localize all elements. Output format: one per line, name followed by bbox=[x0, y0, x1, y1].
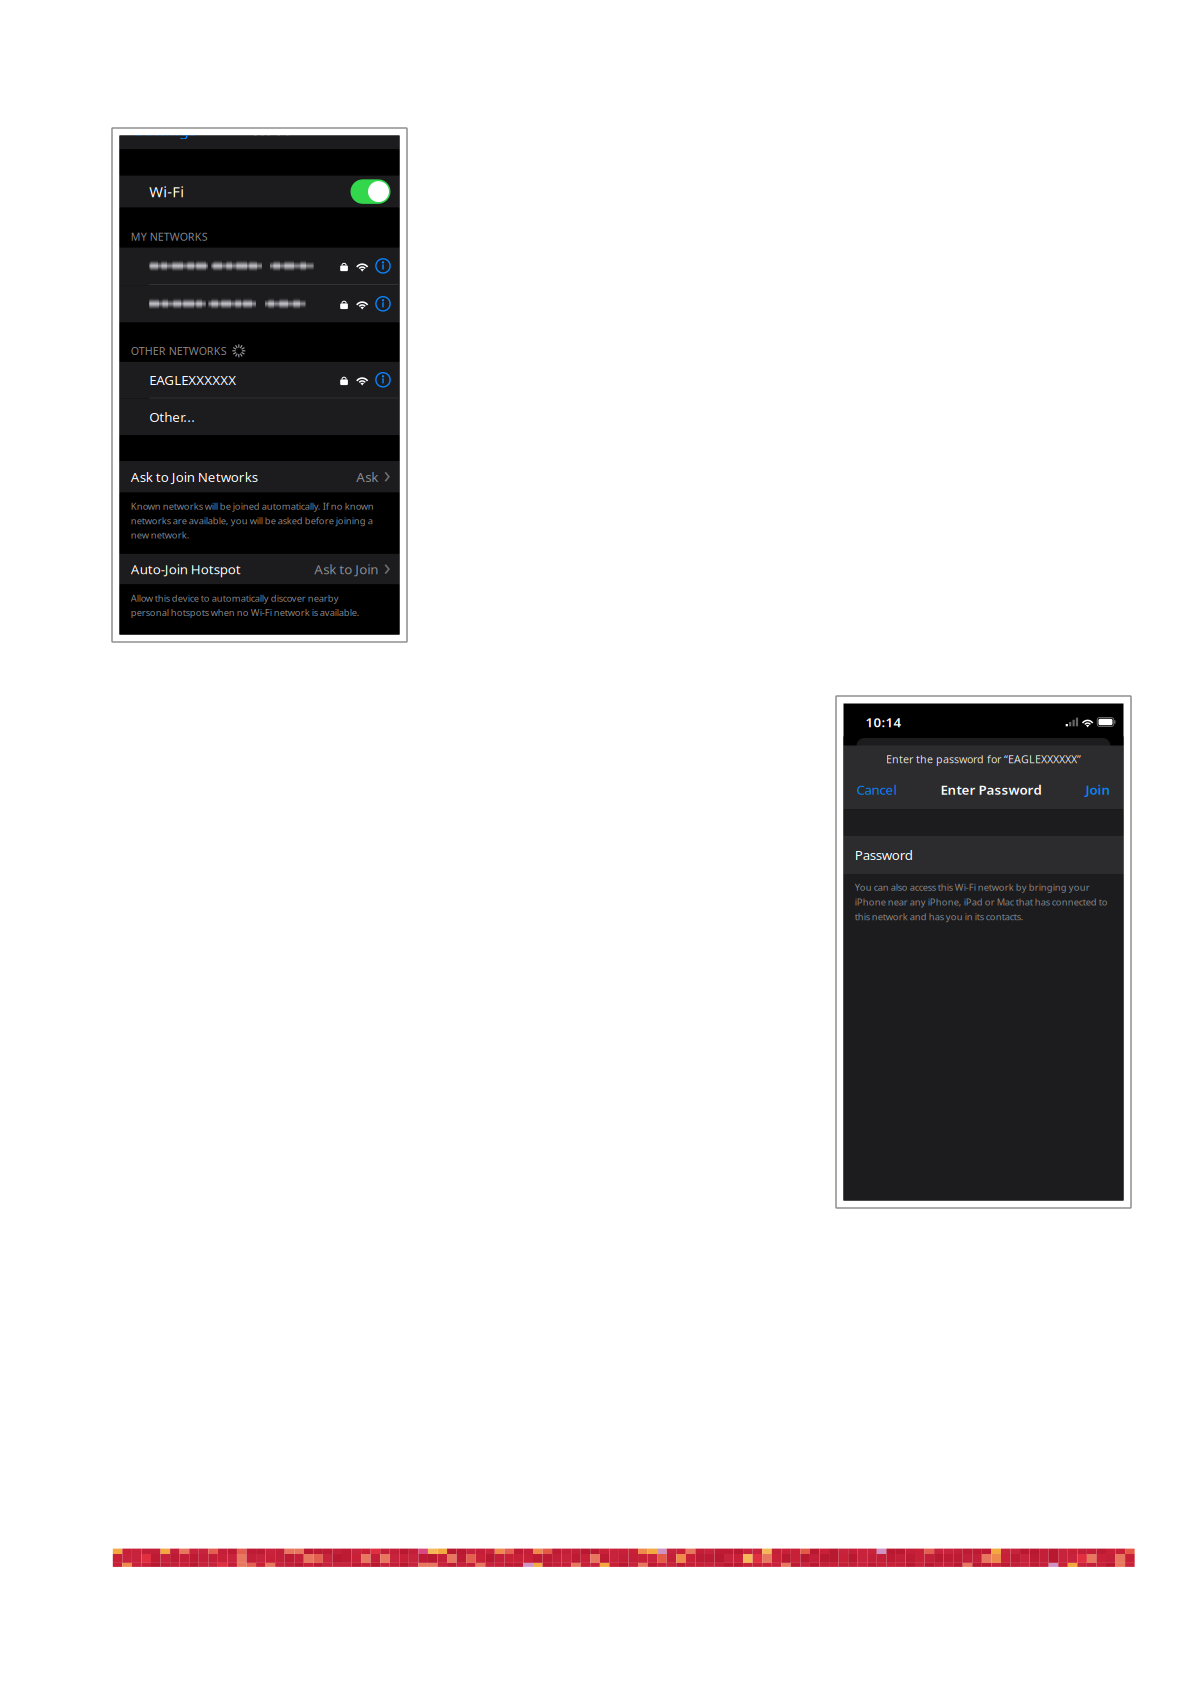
staticText: Ask to Join bbox=[314, 560, 378, 578]
button[interactable]: Password bbox=[843, 835, 1123, 874]
staticText: Wi-Fi bbox=[251, 120, 290, 141]
staticText: MY NETWORKS bbox=[131, 229, 208, 244]
staticText: Wi-Fi bbox=[149, 182, 184, 201]
button[interactable]: Auto-Join Hotspot bbox=[119, 554, 399, 584]
staticText: Known networks will be joined automatica… bbox=[131, 500, 374, 541]
staticText: EAGLEXXXXXX bbox=[149, 371, 236, 389]
button[interactable]: Cancel bbox=[854, 778, 898, 801]
staticText: Ask bbox=[356, 468, 378, 486]
button[interactable]: Wi-Fi bbox=[119, 176, 399, 208]
staticText: OTHER NETWORKS bbox=[131, 344, 227, 358]
staticText: You can also access this Wi-Fi network b… bbox=[855, 881, 1108, 923]
button[interactable]: Join bbox=[1083, 778, 1112, 801]
staticText: Allow this device to automatically disco… bbox=[131, 592, 360, 619]
staticText: Password bbox=[855, 846, 913, 864]
staticText: Auto-Join Hotspot bbox=[131, 560, 241, 578]
button[interactable] bbox=[119, 285, 399, 322]
staticText: Ask to Join Networks bbox=[131, 468, 258, 486]
button[interactable]: EAGLEXXXXXX bbox=[119, 362, 399, 399]
button[interactable]: Ask to Join Networks bbox=[119, 461, 399, 492]
staticText: Settings bbox=[135, 119, 197, 140]
staticText: Enter Password bbox=[940, 781, 1041, 798]
staticText: Enter the password for “EAGLEXXXXXX” bbox=[886, 752, 1081, 766]
staticText: 10:14 bbox=[865, 713, 901, 731]
button[interactable]: Other... bbox=[119, 399, 399, 435]
staticText: Join bbox=[1085, 781, 1110, 798]
staticText: Cancel bbox=[856, 781, 896, 798]
staticText: Other... bbox=[149, 408, 195, 426]
button[interactable] bbox=[119, 248, 399, 285]
